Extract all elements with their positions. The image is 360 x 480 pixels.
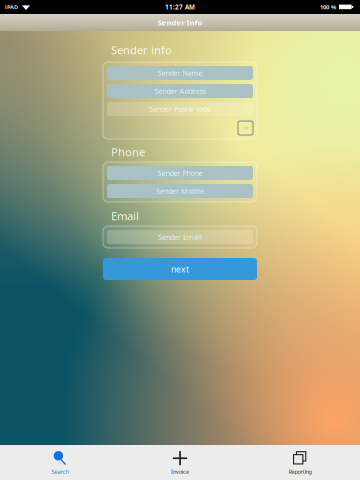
staticText: Sender Name [157,68,202,78]
button[interactable]: Invoice [120,445,240,480]
staticText: Reporting [288,468,311,475]
staticText: Invoice [171,468,189,475]
staticText: Sender Postal code [149,104,211,114]
staticText: Sender info [111,42,172,58]
staticText: next [171,263,189,275]
button[interactable]: next [103,258,257,280]
staticText: Sender Address [154,86,205,96]
staticText: Sender Mobile [156,186,204,196]
staticText: iPAD [5,3,18,11]
staticText: ··· [242,123,248,133]
staticText: Phone [111,144,145,160]
button[interactable]: Reporting [240,445,360,480]
staticText: 100 % [320,3,336,11]
staticText: Sender Phone [157,168,202,178]
button[interactable]: Search [0,445,120,480]
staticText: Email [111,208,139,224]
button[interactable]: More postal code options [238,121,253,135]
staticText: 11:27 AM [165,3,195,11]
staticText: Sender Email [158,232,202,242]
staticText: Sender Info [157,17,202,28]
staticText: Search [51,468,68,475]
